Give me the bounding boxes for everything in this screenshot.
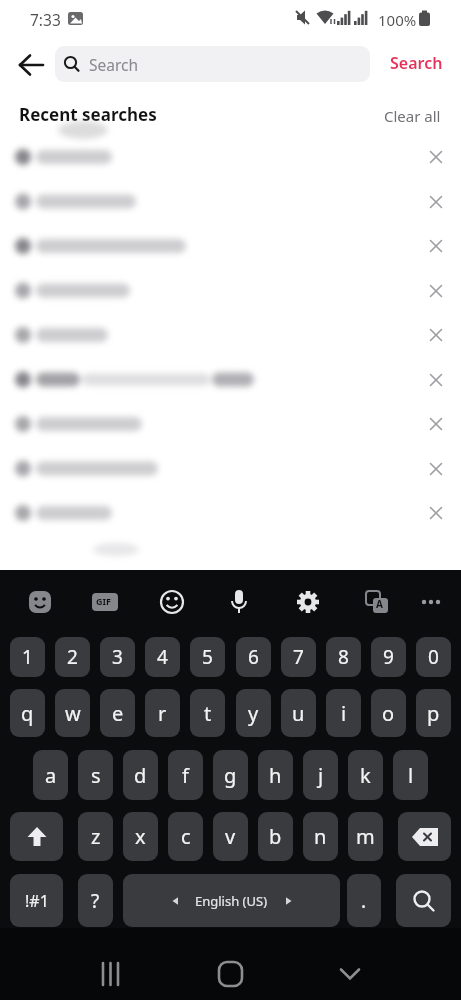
staticText: ?	[91, 888, 100, 914]
button[interactable]: d	[123, 750, 158, 800]
button[interactable]: a	[33, 750, 68, 800]
button[interactable]: 1	[10, 637, 45, 677]
staticText: l	[408, 762, 414, 789]
button[interactable]	[87, 584, 123, 620]
button[interactable]: x	[123, 812, 158, 861]
staticText: Clear all	[384, 106, 441, 126]
staticText: 3	[112, 644, 123, 670]
button[interactable]	[221, 584, 257, 620]
staticText: k	[360, 762, 371, 789]
button[interactable]	[424, 190, 448, 214]
button[interactable]: .	[347, 874, 381, 927]
button[interactable]: v	[213, 812, 248, 861]
button[interactable]: 0	[416, 637, 451, 677]
staticText: 1	[22, 644, 33, 670]
button[interactable]: i	[326, 689, 361, 737]
staticText: y	[248, 700, 259, 727]
staticText: t	[204, 700, 212, 727]
button[interactable]: c	[168, 812, 203, 861]
staticText: !#1	[25, 890, 49, 912]
button[interactable]: 2	[55, 637, 90, 677]
button[interactable]	[424, 234, 448, 258]
button[interactable]	[424, 412, 448, 436]
button[interactable]: 4	[145, 637, 180, 677]
button[interactable]	[424, 145, 448, 169]
button[interactable]: z	[78, 812, 113, 861]
button[interactable]	[10, 812, 63, 861]
button[interactable]: t	[190, 689, 225, 737]
staticText: 5	[202, 644, 213, 670]
staticText: z	[91, 823, 101, 850]
staticText: 2	[67, 644, 78, 670]
button[interactable]: b	[258, 812, 293, 861]
button[interactable]: !#1	[10, 874, 63, 927]
button[interactable]	[424, 323, 448, 347]
button[interactable]: 9	[371, 637, 406, 677]
button[interactable]: g	[213, 750, 248, 800]
button[interactable]: 7	[281, 637, 316, 677]
button[interactable]: f	[168, 750, 203, 800]
button[interactable]	[398, 812, 451, 861]
button[interactable]: r	[145, 689, 180, 737]
button[interactable]	[424, 457, 448, 481]
staticText: a	[45, 762, 57, 789]
button[interactable]	[424, 279, 448, 303]
button[interactable]	[413, 584, 449, 620]
button[interactable]: j	[303, 750, 338, 800]
button[interactable]	[290, 584, 326, 620]
staticText: 4	[157, 644, 168, 670]
staticText: d	[134, 762, 147, 789]
button[interactable]: l	[393, 750, 428, 800]
button[interactable]: w	[55, 689, 90, 737]
button[interactable]: Search	[55, 46, 370, 82]
staticText: h	[269, 762, 282, 789]
button[interactable]	[424, 368, 448, 392]
button[interactable]: Search	[384, 48, 448, 78]
button[interactable]: 3	[100, 637, 135, 677]
button[interactable]: q	[10, 689, 45, 737]
staticText: o	[382, 700, 395, 727]
button[interactable]	[396, 874, 451, 927]
button[interactable]	[212, 962, 248, 998]
button[interactable]	[92, 962, 128, 998]
button[interactable]: s	[78, 750, 113, 800]
button[interactable]: 6	[236, 637, 271, 677]
button[interactable]: English (US)	[123, 874, 340, 927]
button[interactable]: m	[348, 812, 383, 861]
button[interactable]: 8	[326, 637, 361, 677]
staticText: A	[376, 597, 383, 611]
button[interactable]: e	[100, 689, 135, 737]
staticText: f	[182, 762, 189, 789]
staticText: w	[65, 700, 81, 727]
button[interactable]: u	[281, 689, 316, 737]
staticText: Recent searches	[19, 103, 157, 126]
staticText: j	[318, 762, 324, 789]
button[interactable]	[12, 50, 50, 80]
staticText: English (US)	[195, 892, 268, 910]
button[interactable]	[22, 584, 58, 620]
button[interactable]: ?	[78, 874, 113, 927]
button[interactable]: n	[303, 812, 338, 861]
staticText: m	[356, 823, 375, 850]
button[interactable]: o	[371, 689, 406, 737]
button[interactable]	[332, 962, 368, 998]
button[interactable]	[154, 584, 190, 620]
button[interactable]	[424, 501, 448, 525]
staticText: 9	[383, 644, 394, 670]
button[interactable]: h	[258, 750, 293, 800]
button[interactable]	[359, 584, 395, 620]
staticText: n	[314, 823, 327, 850]
button[interactable]: y	[236, 689, 271, 737]
staticText: 7	[293, 644, 304, 670]
button[interactable]: k	[348, 750, 383, 800]
button[interactable]: p	[416, 689, 451, 737]
button[interactable]: 5	[190, 637, 225, 677]
staticText: e	[112, 700, 124, 727]
staticText: v	[225, 823, 236, 850]
staticText: s	[91, 762, 101, 789]
staticText: Search	[89, 54, 139, 75]
staticText: GIF	[96, 595, 111, 607]
staticText: q	[21, 700, 34, 727]
staticText: r	[158, 700, 167, 727]
button[interactable]: Clear all	[378, 100, 448, 128]
